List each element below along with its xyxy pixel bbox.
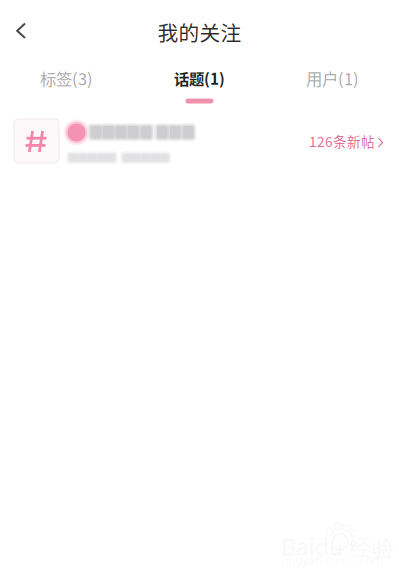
button[interactable]: Back [0,0,44,52]
staticText: 126条新帖 [309,131,375,151]
button[interactable]: 用户(1) [266,52,399,104]
button[interactable]: 126条新帖 [0,104,399,161]
staticText: 用户(1) [306,66,359,90]
staticText: 我的关注 [157,17,241,47]
button[interactable]: 话题(1) [133,52,266,104]
staticText: 标签(3) [40,66,93,90]
button[interactable]: 标签(3) [0,52,133,104]
staticText: 话题(1) [174,67,225,89]
